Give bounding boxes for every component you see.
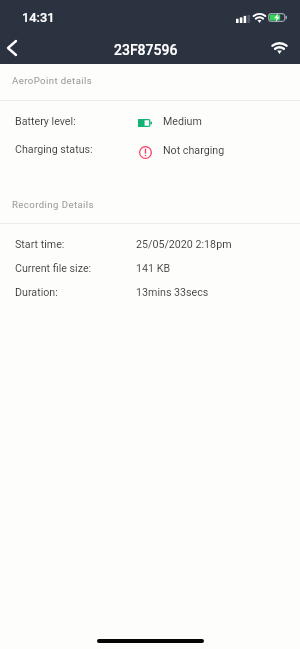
staticText: 14:31	[22, 10, 55, 25]
staticText: Battery level:	[15, 115, 76, 128]
button[interactable]: Back	[0, 32, 24, 64]
button[interactable]: Duration:	[0, 281, 300, 303]
button[interactable]: Current file size:	[0, 257, 300, 279]
staticText: 13mins 33secs	[136, 286, 209, 299]
staticText: Charging status:	[15, 143, 93, 156]
button[interactable]: Wi-Fi	[264, 32, 294, 64]
staticText: 23F87596	[114, 42, 178, 58]
staticText: Recording Details	[12, 199, 94, 210]
staticText: Start time:	[15, 238, 65, 251]
staticText: Not charging	[163, 144, 225, 157]
button[interactable]: Battery level:	[0, 110, 300, 132]
staticText: Duration:	[15, 286, 58, 299]
staticText: Current file size:	[15, 262, 92, 275]
staticText: 25/05/2020 2:18pm	[136, 238, 232, 251]
staticText: 141 KB	[136, 262, 171, 275]
button[interactable]: Charging status:	[0, 138, 300, 160]
staticText: Medium	[163, 115, 202, 128]
staticText: AeroPoint details	[12, 75, 93, 86]
button[interactable]: Start time:	[0, 233, 300, 255]
